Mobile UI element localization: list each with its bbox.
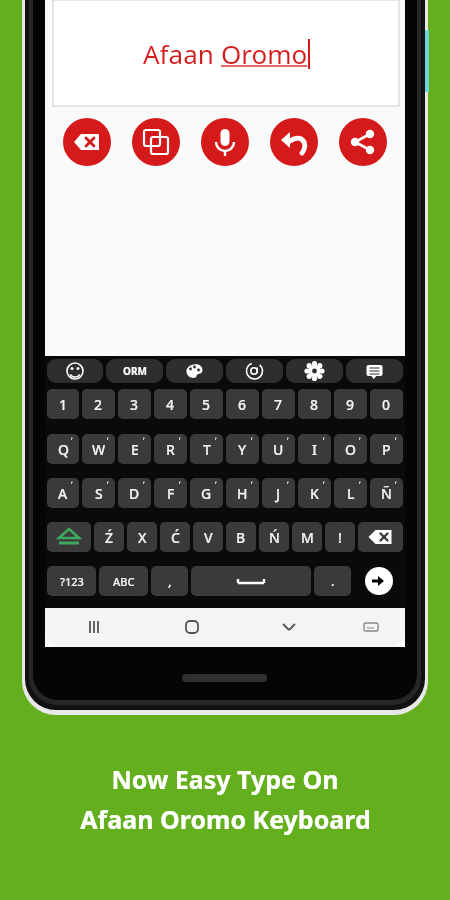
- staticText: P: [382, 440, 391, 459]
- staticText: ʼ: [107, 479, 109, 490]
- button[interactable]: Hide keyboard: [240, 608, 337, 646]
- button[interactable]: 7: [262, 389, 295, 419]
- staticText: ʼ: [395, 479, 397, 490]
- staticText: H: [237, 484, 248, 503]
- button[interactable]: Home: [143, 608, 240, 646]
- button[interactable]: ORM: [106, 359, 163, 383]
- button[interactable]: W: [82, 434, 115, 464]
- button[interactable]: ABC: [99, 566, 148, 596]
- button[interactable]: ?123: [47, 566, 96, 596]
- staticText: !: [338, 528, 342, 547]
- button[interactable]: P: [370, 434, 403, 464]
- button[interactable]: V: [193, 522, 223, 552]
- button[interactable]: 0: [370, 389, 403, 419]
- staticText: ORM: [123, 364, 147, 378]
- staticText: ʼ: [215, 435, 217, 446]
- staticText: ʼ: [287, 435, 289, 446]
- staticText: E: [131, 440, 139, 459]
- button[interactable]: U: [262, 434, 295, 464]
- button[interactable]: 1: [47, 389, 79, 419]
- button[interactable]: 4: [154, 389, 187, 419]
- button[interactable]: G: [190, 478, 223, 508]
- staticText: ʼ: [323, 435, 325, 446]
- staticText: B: [236, 528, 246, 547]
- button[interactable]: D: [118, 478, 151, 508]
- staticText: ʼ: [323, 479, 325, 490]
- button[interactable]: Email: [226, 359, 283, 383]
- staticText: Ñ: [381, 484, 392, 503]
- button[interactable]: F: [154, 478, 187, 508]
- button[interactable]: Voice input: [201, 118, 249, 166]
- staticText: 4: [166, 395, 175, 414]
- staticText: U: [273, 440, 284, 459]
- button[interactable]: Space: [191, 566, 311, 596]
- button[interactable]: Switch keyboard: [337, 608, 405, 646]
- button[interactable]: Ñ: [370, 478, 403, 508]
- staticText: ?123: [60, 574, 84, 589]
- button[interactable]: Share: [339, 118, 387, 166]
- staticText: X: [138, 528, 147, 547]
- button[interactable]: Q: [47, 434, 79, 464]
- button[interactable]: Shift: [47, 522, 91, 552]
- staticText: 5: [202, 395, 211, 414]
- button[interactable]: 3: [118, 389, 151, 419]
- button[interactable]: T: [190, 434, 223, 464]
- staticText: ʼ: [179, 479, 181, 490]
- button[interactable]: Copy: [132, 118, 180, 166]
- button[interactable]: H: [226, 478, 259, 508]
- staticText: S: [95, 484, 103, 503]
- button[interactable]: X: [127, 522, 157, 552]
- staticText: 2: [94, 395, 103, 414]
- staticText: 1: [59, 395, 68, 414]
- staticText: M: [301, 528, 314, 547]
- button[interactable]: !: [325, 522, 355, 552]
- button[interactable]: Stickers: [346, 359, 403, 383]
- button[interactable]: Theme: [166, 359, 223, 383]
- staticText: Ń: [269, 528, 280, 547]
- button[interactable]: 6: [226, 389, 259, 419]
- button[interactable]: Enter: [354, 566, 403, 596]
- button[interactable]: J: [262, 478, 295, 508]
- button[interactable]: Recents: [45, 608, 143, 646]
- button[interactable]: .: [314, 566, 351, 596]
- button[interactable]: M: [292, 522, 322, 552]
- button[interactable]: 2: [82, 389, 115, 419]
- button[interactable]: E: [118, 434, 151, 464]
- staticText: 3: [130, 395, 139, 414]
- staticText: J: [276, 484, 281, 503]
- staticText: ʼ: [251, 479, 253, 490]
- staticText: Oromo: [221, 36, 308, 71]
- button[interactable]: Clear: [63, 118, 111, 166]
- staticText: ʼ: [287, 479, 289, 490]
- button[interactable]: Afaan: [53, 0, 399, 106]
- button[interactable]: R: [154, 434, 187, 464]
- button[interactable]: O: [334, 434, 367, 464]
- button[interactable]: Ć: [160, 522, 190, 552]
- button[interactable]: L: [334, 478, 367, 508]
- button[interactable]: Ź: [94, 522, 124, 552]
- button[interactable]: S: [82, 478, 115, 508]
- button[interactable]: I: [298, 434, 331, 464]
- staticText: 8: [310, 395, 319, 414]
- button[interactable]: Y: [226, 434, 259, 464]
- staticText: ʼ: [71, 479, 73, 490]
- staticText: ʼ: [71, 435, 73, 446]
- button[interactable]: Undo: [270, 118, 318, 166]
- button[interactable]: ,: [151, 566, 188, 596]
- button[interactable]: A: [47, 478, 79, 508]
- button[interactable]: Emoji: [47, 359, 103, 383]
- staticText: Ź: [105, 528, 114, 547]
- staticText: Y: [238, 440, 247, 459]
- button[interactable]: 9: [334, 389, 367, 419]
- button[interactable]: B: [226, 522, 256, 552]
- button[interactable]: Ń: [259, 522, 289, 552]
- button[interactable]: 8: [298, 389, 331, 419]
- button[interactable]: Backspace: [358, 522, 403, 552]
- staticText: ʼ: [179, 435, 181, 446]
- staticText: Ć: [171, 528, 180, 547]
- button[interactable]: K: [298, 478, 331, 508]
- staticText: 9: [346, 395, 355, 414]
- button[interactable]: 5: [190, 389, 223, 419]
- button[interactable]: Settings: [286, 359, 343, 383]
- staticText: L: [347, 484, 355, 503]
